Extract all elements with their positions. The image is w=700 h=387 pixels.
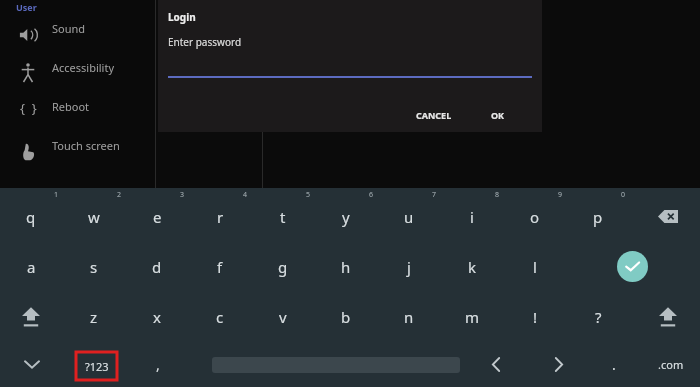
staticText: s [90, 257, 98, 277]
staticText: 9 [548, 190, 572, 207]
button[interactable]: . [594, 344, 634, 384]
staticText: e [153, 207, 162, 227]
staticText: v [279, 307, 287, 327]
staticText: l [533, 257, 537, 277]
button[interactable]: OK [476, 100, 520, 130]
button[interactable]: j [378, 243, 440, 290]
button[interactable]: z [63, 293, 125, 340]
button[interactable]: e [126, 193, 188, 240]
button[interactable]: r [189, 193, 251, 240]
staticText: Sound [52, 21, 86, 36]
button[interactable]: Touch screen [0, 133, 155, 172]
staticText: t [280, 207, 286, 227]
staticText: p [593, 207, 603, 227]
staticText: Touch screen [52, 138, 120, 153]
staticText: f [217, 257, 223, 277]
button[interactable]: p [567, 193, 629, 240]
staticText: n [404, 307, 414, 327]
staticText: q [26, 207, 36, 227]
staticText: 5 [296, 190, 320, 207]
button[interactable]: ? [567, 293, 629, 340]
staticText: z [90, 307, 98, 327]
button[interactable]: o [504, 193, 566, 240]
staticText: 8 [485, 190, 509, 207]
staticText: o [530, 207, 540, 227]
staticText: 6 [359, 190, 383, 207]
button[interactable]: Enter [601, 243, 663, 290]
button[interactable]: s [63, 243, 125, 290]
staticText: x [153, 307, 161, 327]
staticText: 0 [611, 190, 635, 207]
staticText: OK [491, 109, 505, 121]
button[interactable]: CANCEL [406, 100, 462, 130]
button[interactable]: u [378, 193, 440, 240]
button[interactable]: .com [645, 348, 697, 380]
button[interactable]: Backspace [637, 193, 699, 240]
button[interactable]: q [0, 193, 62, 240]
staticText: Enter password [168, 35, 242, 49]
button[interactable]: Hide keyboard [10, 344, 54, 384]
button[interactable]: g [252, 243, 314, 290]
button[interactable]: Sound [0, 16, 155, 55]
staticText: w [88, 207, 100, 227]
staticText: 4 [233, 190, 257, 207]
staticText: a [27, 257, 36, 277]
staticText: CANCEL [416, 109, 452, 121]
button[interactable]: Accessibility [0, 55, 155, 94]
staticText: h [341, 257, 351, 277]
button[interactable]: l [504, 243, 566, 290]
button[interactable]: m [441, 293, 503, 340]
button[interactable]: Shift [0, 293, 62, 340]
staticText: j [407, 257, 411, 277]
staticText: b [341, 307, 351, 327]
staticText: User [16, 1, 37, 13]
staticText: ! [533, 307, 538, 327]
button[interactable]: ?123 [76, 352, 117, 380]
button[interactable]: Shift [637, 293, 699, 340]
button[interactable]: t [252, 193, 314, 240]
staticText: u [404, 207, 414, 227]
staticText: m [465, 307, 480, 327]
staticText: Reboot [52, 99, 90, 114]
button[interactable]: x [126, 293, 188, 340]
button[interactable]: y [315, 193, 377, 240]
button[interactable]: h [315, 243, 377, 290]
staticText: d [152, 257, 162, 277]
staticText: { } [20, 99, 37, 117]
button[interactable]: f [189, 243, 251, 290]
staticText: c [216, 307, 224, 327]
button[interactable]: i [441, 193, 503, 240]
staticText: . [612, 355, 616, 374]
button[interactable]: w [63, 193, 125, 240]
button[interactable]: k [441, 243, 503, 290]
staticText: r [217, 207, 224, 227]
button[interactable]: a [0, 243, 62, 290]
staticText: y [342, 207, 350, 227]
button[interactable]: , [130, 344, 186, 384]
staticText: Login [168, 10, 196, 24]
staticText: 1 [44, 190, 68, 207]
staticText: 3 [170, 190, 194, 207]
staticText: Accessibility [52, 60, 115, 75]
button[interactable]: Reboot [0, 94, 155, 133]
staticText: i [470, 207, 474, 227]
button[interactable]: Move cursor left [473, 344, 519, 384]
staticText: 2 [107, 190, 131, 207]
staticText: ?123 [85, 359, 109, 374]
button[interactable]: b [315, 293, 377, 340]
staticText: 7 [422, 190, 446, 207]
button[interactable]: Move cursor right [536, 344, 582, 384]
staticText: g [278, 257, 288, 277]
button[interactable]: v [252, 293, 314, 340]
staticText: k [468, 257, 477, 277]
button[interactable]: d [126, 243, 188, 290]
button[interactable]: n [378, 293, 440, 340]
staticText: , [156, 355, 160, 374]
staticText: ? [595, 307, 602, 327]
staticText: .com [658, 357, 684, 372]
button[interactable]: ! [504, 293, 566, 340]
button[interactable]: c [189, 293, 251, 340]
